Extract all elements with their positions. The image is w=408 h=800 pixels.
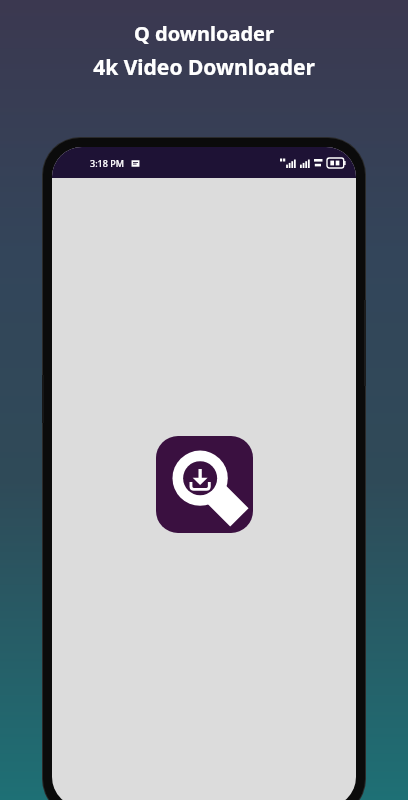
staticText: Q downloader [134,20,274,47]
button[interactable]: Q downloader app icon [156,436,253,533]
staticText: 3:18 PM [90,157,124,169]
staticText: 4k Video Downloader [93,53,315,82]
